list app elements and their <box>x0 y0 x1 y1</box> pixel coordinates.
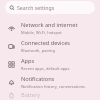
staticText: Search settings <box>17 4 55 11</box>
staticText: Connected devices <box>21 39 71 47</box>
other: Connected devices <box>7 42 16 51</box>
other: Notifications <box>7 78 16 87</box>
other: Apps <box>7 60 16 69</box>
button[interactable]: Connected devices <box>0 37 100 55</box>
staticText: Battery <box>21 91 41 99</box>
other: Search <box>9 5 15 11</box>
other: Battery <box>7 91 16 100</box>
staticText: Apps <box>21 57 35 65</box>
button[interactable]: Apps <box>0 55 100 73</box>
staticText: Network and internet <box>21 21 78 29</box>
staticText: Bluetooth, pairing <box>21 48 56 53</box>
staticText: Recent apps, default apps <box>21 66 70 71</box>
button[interactable]: Network and internet <box>0 19 100 37</box>
button[interactable]: Battery <box>0 91 100 100</box>
staticText: Mobile, Wi-Fi, hotspot <box>21 30 62 35</box>
button[interactable]: Search <box>5 1 95 14</box>
button[interactable]: Notifications <box>0 73 100 91</box>
other: Network and internet <box>7 24 16 33</box>
staticText: Notification history, conversations <box>21 84 86 89</box>
staticText: Notifications <box>21 75 55 83</box>
